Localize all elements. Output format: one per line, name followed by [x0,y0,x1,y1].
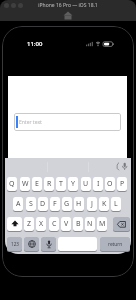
button[interactable] [63,11,73,20]
staticText: E [35,179,39,189]
button[interactable]: P [117,177,127,191]
staticText: U [83,179,89,189]
staticText: G [64,199,70,209]
button[interactable]: V [61,217,71,231]
button[interactable]: H [74,197,84,211]
staticText: 123 [11,241,19,247]
button[interactable]: F [50,197,60,211]
button[interactable]: W [20,177,30,191]
button[interactable] [117,161,128,172]
staticText: return [108,241,123,248]
staticText: 11:00 [27,40,43,48]
staticText: X [39,219,44,229]
button[interactable]: A [13,197,23,211]
button[interactable]: B [73,217,83,231]
button[interactable]: I [93,177,103,191]
button[interactable] [41,237,56,251]
staticText: F [53,199,57,209]
staticText: Q [9,179,15,189]
button[interactable] [58,237,97,251]
button[interactable]: S [26,197,36,211]
button[interactable]: Y [68,177,78,191]
staticText: J [91,199,93,209]
button[interactable]: return [100,237,130,251]
button[interactable]: O [105,177,115,191]
staticText: O [107,179,113,189]
staticText: P [120,179,125,189]
button[interactable]: L [111,197,121,211]
staticText: Y [71,179,75,189]
staticText: Enter text [19,119,42,126]
button[interactable]: T [56,177,66,191]
button[interactable]: 123 [7,237,22,251]
button[interactable] [113,217,130,231]
button[interactable]: J [87,197,97,211]
staticText: W [22,179,29,189]
staticText: T [59,179,63,189]
button[interactable]: Enter text [14,113,121,131]
staticText: iPhone 16 Pro — iOS 18.1 [0,2,136,9]
button[interactable]: X [36,217,46,231]
button[interactable] [11,3,16,8]
staticText: I [97,179,100,189]
button[interactable]: Z [24,217,34,231]
button[interactable]: D [38,197,48,211]
button[interactable]: N [85,217,95,231]
button[interactable]: R [44,177,54,191]
staticText: D [40,199,46,209]
button[interactable] [7,217,22,231]
staticText: V [64,219,69,229]
staticText: B [76,219,81,229]
staticText: M [99,219,106,229]
staticText: C [52,219,57,229]
button[interactable]: Q [7,177,17,191]
button[interactable]: E [32,177,42,191]
button[interactable]: G [62,197,72,211]
button[interactable] [4,3,9,8]
staticText: H [76,199,82,209]
button[interactable] [24,237,39,251]
staticText: K [102,199,107,209]
staticText: R [47,179,52,189]
button[interactable]: C [49,217,59,231]
staticText: A [16,199,21,209]
button[interactable] [18,3,23,8]
button[interactable]: M [97,217,107,231]
staticText: L [114,199,118,209]
button[interactable]: K [99,197,109,211]
staticText: S [29,199,33,209]
staticText: Z [27,219,32,229]
button[interactable]: U [81,177,91,191]
staticText: N [87,219,93,229]
